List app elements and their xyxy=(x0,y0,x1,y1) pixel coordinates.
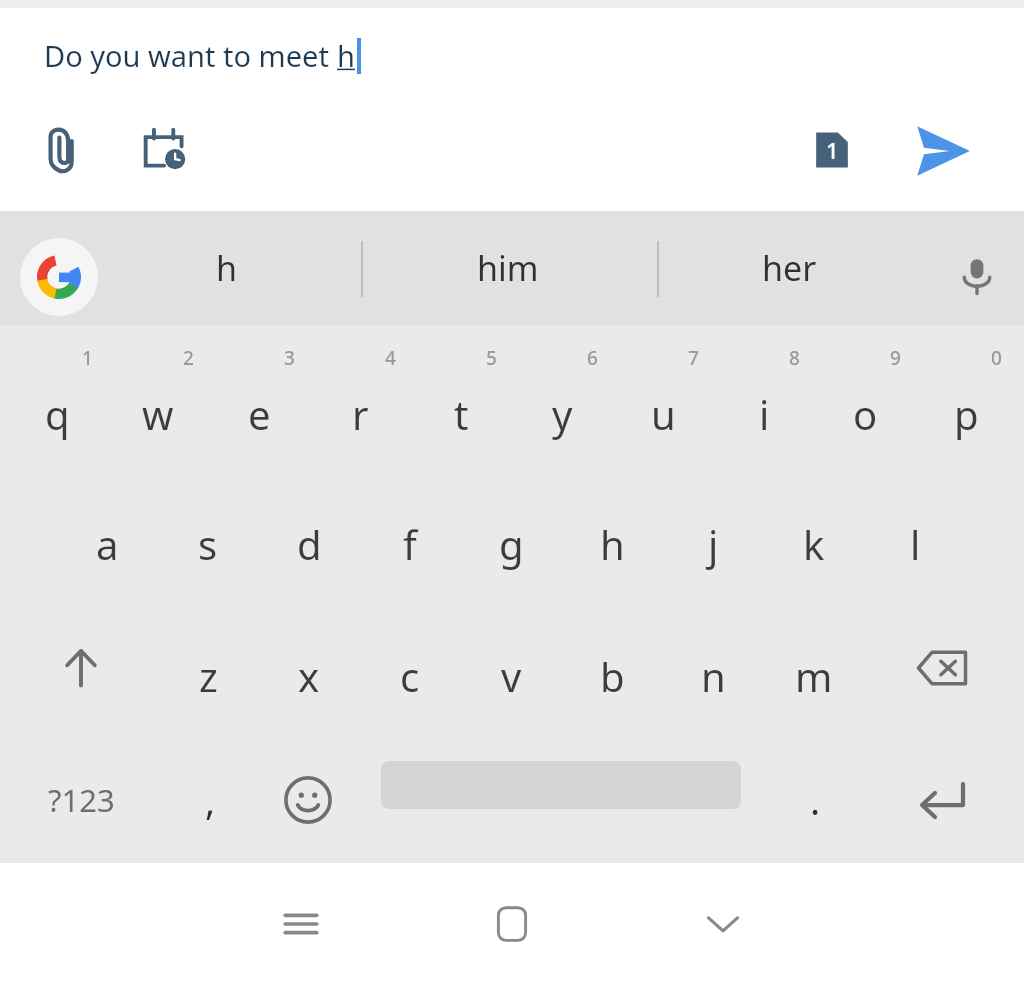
button[interactable]: . xyxy=(765,745,865,855)
button[interactable]: Enter xyxy=(880,745,1004,855)
staticText: 0 xyxy=(991,345,1002,371)
button[interactable]: Google xyxy=(20,238,98,316)
button[interactable] xyxy=(512,351,612,461)
button[interactable] xyxy=(411,351,511,461)
staticText: l xyxy=(910,517,921,571)
button[interactable] xyxy=(57,481,157,591)
button[interactable] xyxy=(209,351,309,461)
staticText: p xyxy=(954,387,979,441)
staticText: b xyxy=(600,649,625,703)
button[interactable]: him xyxy=(398,211,618,325)
staticText: w xyxy=(142,387,174,441)
button[interactable]: SIM 1 xyxy=(800,118,864,182)
button[interactable]: Voice input xyxy=(930,229,1024,323)
staticText: x xyxy=(298,649,320,703)
button[interactable]: , xyxy=(160,745,260,855)
button[interactable] xyxy=(158,481,258,591)
button[interactable] xyxy=(360,481,460,591)
staticText: 1 xyxy=(82,345,93,371)
staticText: o xyxy=(853,387,878,441)
staticText: h xyxy=(216,245,238,291)
button[interactable]: Emoji xyxy=(258,745,358,855)
staticText: z xyxy=(199,649,218,703)
staticText: g xyxy=(499,517,524,571)
staticText: 6 xyxy=(587,345,598,371)
staticText: h xyxy=(600,517,625,571)
button[interactable]: Backspace xyxy=(880,613,1004,723)
staticText: ?123 xyxy=(48,779,115,821)
button[interactable] xyxy=(663,481,763,591)
button[interactable] xyxy=(108,351,208,461)
staticText: j xyxy=(708,517,719,571)
button[interactable]: Send xyxy=(905,113,981,189)
staticText: u xyxy=(651,387,676,441)
staticText: 9 xyxy=(890,345,901,371)
staticText: e xyxy=(248,387,271,441)
staticText: a xyxy=(96,517,119,571)
button[interactable]: Hide keyboard xyxy=(667,868,779,980)
button[interactable] xyxy=(360,613,460,723)
staticText: Do you want to meet xyxy=(44,36,337,75)
button[interactable] xyxy=(562,481,662,591)
button[interactable] xyxy=(259,481,359,591)
staticText: 3 xyxy=(284,345,295,371)
button[interactable]: Schedule send xyxy=(133,118,197,182)
staticText: 2 xyxy=(183,345,194,371)
button[interactable]: Recents xyxy=(245,868,357,980)
staticText: f xyxy=(403,517,417,571)
button[interactable]: Attach file xyxy=(30,118,94,182)
button[interactable] xyxy=(916,351,1016,461)
staticText: t xyxy=(454,387,469,441)
button[interactable] xyxy=(562,613,662,723)
button[interactable] xyxy=(714,351,814,461)
button[interactable] xyxy=(865,481,965,591)
button[interactable]: h xyxy=(117,211,337,325)
staticText: y xyxy=(552,387,573,441)
staticText: . xyxy=(810,774,821,826)
button[interactable]: her xyxy=(679,211,899,325)
staticText: h xyxy=(337,36,355,75)
button[interactable] xyxy=(310,351,410,461)
button[interactable] xyxy=(815,351,915,461)
staticText: 4 xyxy=(385,345,396,371)
button[interactable]: Shift xyxy=(20,613,142,723)
button[interactable] xyxy=(259,613,359,723)
staticText: 1 xyxy=(826,135,839,165)
staticText: m xyxy=(795,649,833,703)
button[interactable] xyxy=(764,481,864,591)
staticText: 7 xyxy=(688,345,699,371)
button[interactable] xyxy=(613,351,713,461)
staticText: s xyxy=(198,517,218,571)
staticText: v xyxy=(501,649,522,703)
staticText: n xyxy=(701,649,726,703)
button[interactable]: ?123 xyxy=(20,745,142,855)
staticText: c xyxy=(400,649,420,703)
staticText: him xyxy=(477,245,539,291)
button[interactable] xyxy=(764,613,864,723)
staticText: i xyxy=(759,387,770,441)
button[interactable]: Home xyxy=(456,868,568,980)
staticText: k xyxy=(803,517,825,571)
staticText: 8 xyxy=(789,345,800,371)
button[interactable] xyxy=(158,613,258,723)
staticText: q xyxy=(45,387,70,441)
button[interactable] xyxy=(461,481,561,591)
button[interactable] xyxy=(7,351,107,461)
staticText: d xyxy=(297,517,322,571)
staticText: , xyxy=(205,774,216,826)
staticText: her xyxy=(762,245,817,291)
button[interactable] xyxy=(461,613,561,723)
staticText: 5 xyxy=(486,345,497,371)
staticText: r xyxy=(352,387,369,441)
button[interactable] xyxy=(663,613,763,723)
